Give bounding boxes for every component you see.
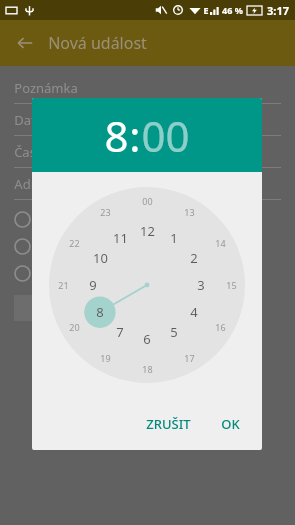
button[interactable] — [14, 260, 295, 287]
staticText: 2 — [190, 249, 198, 267]
staticText: ZRUŠIT — [146, 415, 191, 433]
staticText: 00 — [142, 195, 153, 207]
staticText: Čas — [14, 143, 36, 161]
staticText: 5 — [170, 323, 178, 341]
button[interactable]: 2 — [190, 249, 198, 267]
button[interactable]: OK — [213, 407, 248, 441]
staticText: : — [129, 107, 141, 164]
staticText: 20 — [69, 321, 80, 333]
staticText: 00 — [141, 107, 190, 164]
staticText: 9 — [89, 276, 97, 294]
staticText: Poznámka — [14, 79, 78, 97]
staticText: 13 — [184, 206, 195, 218]
staticText: 17 — [184, 352, 195, 364]
staticText: 10 — [93, 249, 108, 267]
staticText: 14 — [215, 237, 226, 249]
staticText: 1 — [170, 229, 178, 247]
staticText: Nová událost — [48, 32, 147, 54]
button[interactable]: Back — [10, 28, 40, 58]
staticText: 46 % — [222, 4, 243, 16]
button[interactable]: 7 — [116, 323, 124, 341]
staticText: 19 — [100, 352, 111, 364]
button[interactable]: 1 — [170, 229, 178, 247]
staticText: 3:17 — [267, 3, 289, 18]
staticText: 15 — [226, 279, 237, 291]
staticText: 6 — [143, 330, 151, 348]
staticText: OK — [221, 415, 240, 433]
staticText: 22 — [69, 237, 80, 249]
button[interactable]: 4 — [190, 303, 198, 321]
staticText: 16 — [215, 321, 226, 333]
staticText: Adresa — [14, 175, 57, 193]
staticText: 7 — [116, 323, 124, 341]
button[interactable]: 8 — [96, 303, 104, 321]
button[interactable] — [14, 206, 295, 233]
button[interactable] — [14, 233, 295, 260]
staticText: E — [203, 4, 209, 16]
staticText: 12 — [140, 222, 155, 240]
button[interactable]: ZRUŠIT — [138, 407, 199, 441]
staticText: 8 — [96, 303, 104, 321]
staticText: 21 — [58, 279, 69, 291]
staticText: 4 — [190, 303, 198, 321]
button[interactable]: 9 — [89, 276, 97, 294]
staticText: Datum — [14, 111, 56, 129]
button[interactable]: 12 — [140, 222, 155, 240]
button[interactable]: 8 — [104, 107, 129, 164]
button[interactable]: 10 — [93, 249, 108, 267]
button[interactable]: 11 — [113, 229, 128, 247]
staticText: 3 — [197, 276, 205, 294]
staticText: 11 — [113, 229, 128, 247]
button[interactable]: 00 — [141, 107, 190, 164]
button[interactable] — [14, 295, 58, 321]
button[interactable]: 6 — [143, 330, 151, 348]
button[interactable]: 3 — [197, 276, 205, 294]
staticText: 8 — [104, 107, 129, 164]
button[interactable]: 5 — [170, 323, 178, 341]
staticText: 18 — [142, 363, 153, 375]
staticText: 23 — [100, 206, 111, 218]
